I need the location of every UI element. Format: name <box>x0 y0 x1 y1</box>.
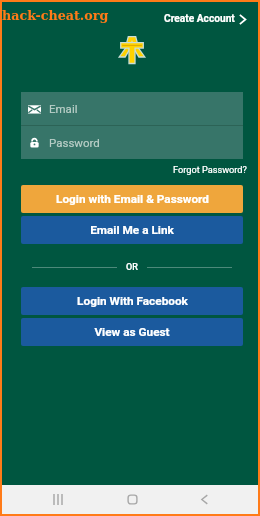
button[interactable]: Email <box>21 92 243 125</box>
button[interactable]: Forgot Password? <box>173 164 247 175</box>
button[interactable]: Back <box>188 485 220 514</box>
button[interactable]: Create Account <box>152 6 258 32</box>
staticText: Login With Facebook <box>77 294 188 308</box>
staticText: hack-cheat.org <box>2 8 109 23</box>
button[interactable]: Recents <box>42 485 74 514</box>
staticText: Email <box>49 102 78 115</box>
button[interactable]: Login with Email & Password <box>21 185 243 213</box>
button[interactable]: Password <box>21 126 243 159</box>
staticText: View as Guest <box>94 325 170 339</box>
button[interactable]: Home <box>116 485 148 514</box>
staticText: Password <box>49 136 100 149</box>
button[interactable]: View as Guest <box>21 318 243 346</box>
staticText: Login with Email & Password <box>56 192 209 206</box>
staticText: Create Account <box>164 13 235 25</box>
button[interactable]: Login With Facebook <box>21 287 243 315</box>
button[interactable]: Email Me a Link <box>21 216 243 244</box>
staticText: Email Me a Link <box>90 223 174 237</box>
staticText: OR <box>126 262 138 272</box>
